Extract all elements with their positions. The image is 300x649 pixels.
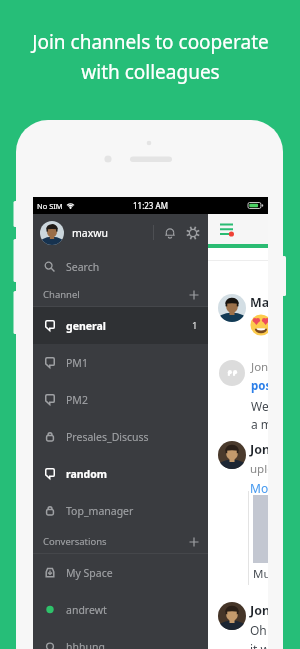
staticText: Top_manager <box>66 504 134 518</box>
staticText: general <box>66 319 106 333</box>
staticText: Search <box>66 260 100 274</box>
button[interactable]: hhhung <box>33 628 208 649</box>
staticText: Jonathan <box>250 441 268 458</box>
button[interactable]: general <box>33 307 208 344</box>
button[interactable]: Presales_Discuss <box>33 418 208 455</box>
button[interactable]: random <box>33 455 208 492</box>
staticText: random <box>66 467 108 481</box>
button[interactable]: Menu <box>219 223 234 236</box>
staticText: with colleagues <box>81 59 220 85</box>
staticText: uploaded a file <box>250 461 268 477</box>
button[interactable]: Notifications <box>163 226 177 240</box>
staticText: Welcome to join <box>251 398 268 414</box>
staticText: Presales_Discuss <box>66 430 149 444</box>
staticText: Channel <box>43 288 80 301</box>
staticText: maxwu <box>72 226 109 240</box>
button[interactable]: PM1 <box>33 344 208 381</box>
staticText: 11:23 AM <box>133 200 168 211</box>
staticText: My Space <box>66 566 113 580</box>
button[interactable]: Top_manager <box>33 492 208 529</box>
staticText: MostImportant.png <box>250 480 268 496</box>
button[interactable]: My Space <box>33 554 208 591</box>
staticText: Jonathan <box>251 359 268 375</box>
staticText: it works <box>250 641 268 649</box>
staticText: PM2 <box>66 393 88 407</box>
staticText: a multi channel <box>251 416 268 432</box>
button[interactable]: Settings <box>186 226 200 240</box>
button[interactable]: Search <box>33 251 208 282</box>
button[interactable]: Add Channel <box>189 290 199 300</box>
staticText: Conversations <box>43 535 107 548</box>
staticText: Music.png <box>253 566 268 582</box>
staticText: posted a message <box>251 378 268 394</box>
staticText: Oh boy <box>250 622 268 638</box>
staticText: PM1 <box>66 356 88 370</box>
button[interactable]: PM2 <box>33 381 208 418</box>
staticText: Jonathan <box>250 602 268 619</box>
button[interactable]: Add Conversations <box>189 537 199 547</box>
staticText: Join channels to cooperate <box>32 29 269 55</box>
staticText: andrewt <box>66 603 107 617</box>
staticText: No SIM <box>37 201 63 211</box>
staticText: Maxwu <box>250 294 268 311</box>
staticText: hhhung <box>66 640 105 649</box>
staticText: 1 <box>192 319 198 332</box>
button[interactable]: andrewt <box>33 591 208 628</box>
